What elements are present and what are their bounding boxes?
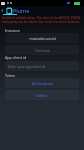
staticText: Instance — [5, 28, 20, 33]
button[interactable]: Enter your app client id — [5, 61, 79, 71]
button[interactable]: Continue — [5, 45, 79, 55]
staticText: Authenticate — [32, 81, 53, 86]
staticText: Plume — [13, 7, 30, 14]
button[interactable]: Back — [0, 6, 5, 15]
staticText: Submit — [36, 93, 48, 98]
staticText: Enter your app client id — [8, 64, 45, 69]
button[interactable]: Submit — [5, 90, 79, 100]
staticText: Continue — [35, 48, 50, 53]
staticText: Token — [5, 73, 16, 78]
staticText: mastodon.social — [29, 36, 56, 41]
button[interactable]: Authenticate — [5, 78, 79, 88]
staticText: Unable to validate token. The value of t… — [2, 16, 82, 24]
staticText: App client id — [5, 55, 27, 60]
button[interactable]: mastodon.social — [5, 33, 79, 43]
